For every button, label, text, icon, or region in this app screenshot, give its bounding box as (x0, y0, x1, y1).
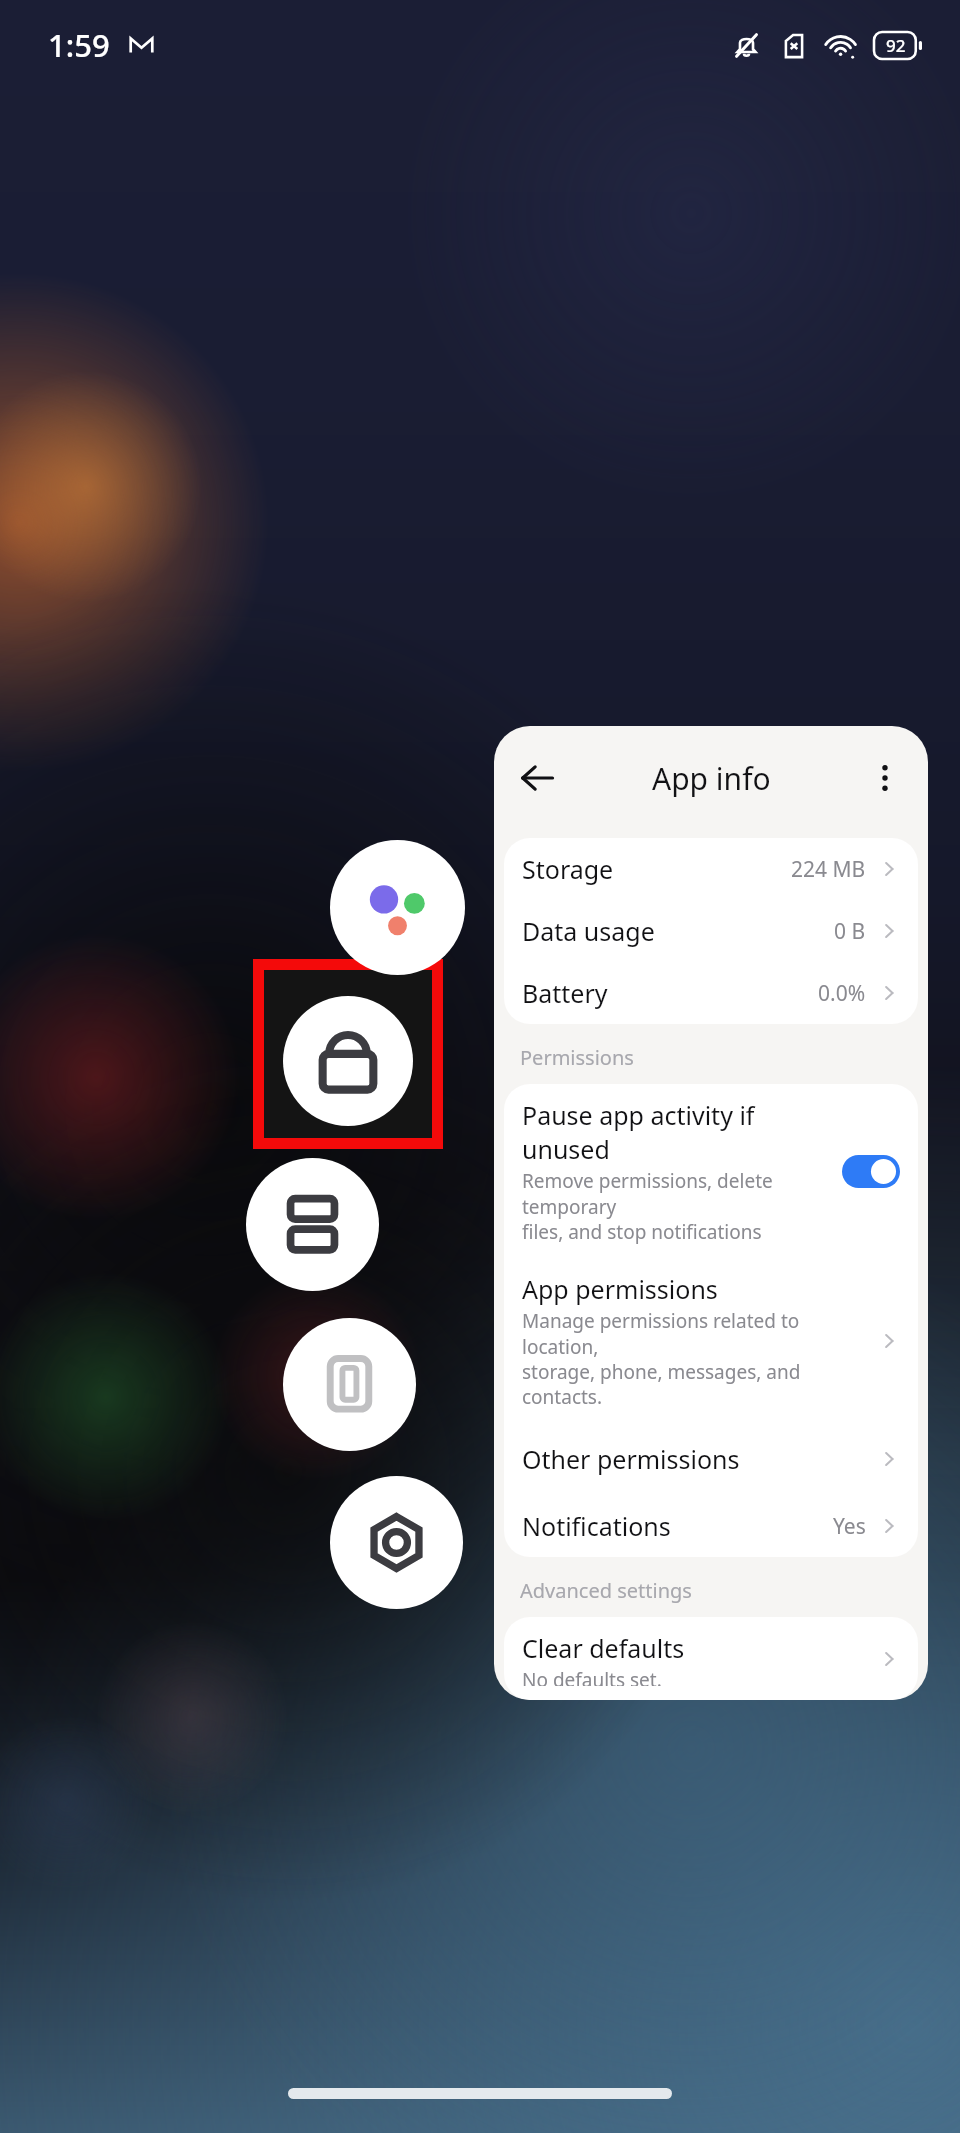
staticText: Pause app activity if unused (522, 1098, 832, 1166)
staticText: 0 B (834, 917, 866, 946)
staticText: Other permissions (522, 1442, 740, 1476)
button[interactable]: More options (858, 751, 912, 805)
button[interactable]: Back (506, 747, 568, 809)
staticText: Battery (522, 976, 608, 1010)
button[interactable]: Other permissions (504, 1423, 918, 1495)
staticText: Manage permissions related to location, … (522, 1308, 866, 1409)
button[interactable]: App settings (330, 1476, 463, 1609)
staticText: Advanced settings (520, 1577, 692, 1604)
button[interactable]: Pause app activity if unused (842, 1155, 900, 1188)
button[interactable]: Lock app (283, 996, 413, 1126)
button[interactable]: Data usage (504, 900, 918, 962)
button[interactable]: Pause app activity if unused (504, 1084, 918, 1258)
button[interactable]: Storage (504, 838, 918, 900)
button[interactable]: App options (330, 840, 465, 975)
staticText: Storage (522, 852, 614, 886)
button[interactable]: Pop-up view (283, 1318, 416, 1451)
staticText: 1:59 (48, 24, 110, 66)
staticText: Remove permissions, delete temporary fil… (522, 1168, 832, 1244)
staticText: Notifications (522, 1509, 671, 1543)
staticText: 224 MB (791, 855, 866, 884)
staticText: App permissions (522, 1272, 718, 1306)
staticText: Clear defaults (522, 1631, 685, 1665)
staticText: No defaults set. (522, 1667, 662, 1686)
staticText: Data usage (522, 914, 655, 948)
button[interactable]: Clear defaults (504, 1617, 918, 1700)
button[interactable]: Notifications (504, 1495, 918, 1557)
staticText: 92 (886, 34, 906, 57)
staticText: App info (652, 758, 771, 799)
button[interactable]: Split screen (246, 1158, 379, 1291)
button[interactable]: Battery (504, 962, 918, 1024)
button[interactable]: App permissions (504, 1258, 918, 1423)
staticText: 0.0% (818, 979, 866, 1008)
staticText: Yes (833, 1512, 866, 1541)
staticText: Permissions (520, 1044, 634, 1071)
